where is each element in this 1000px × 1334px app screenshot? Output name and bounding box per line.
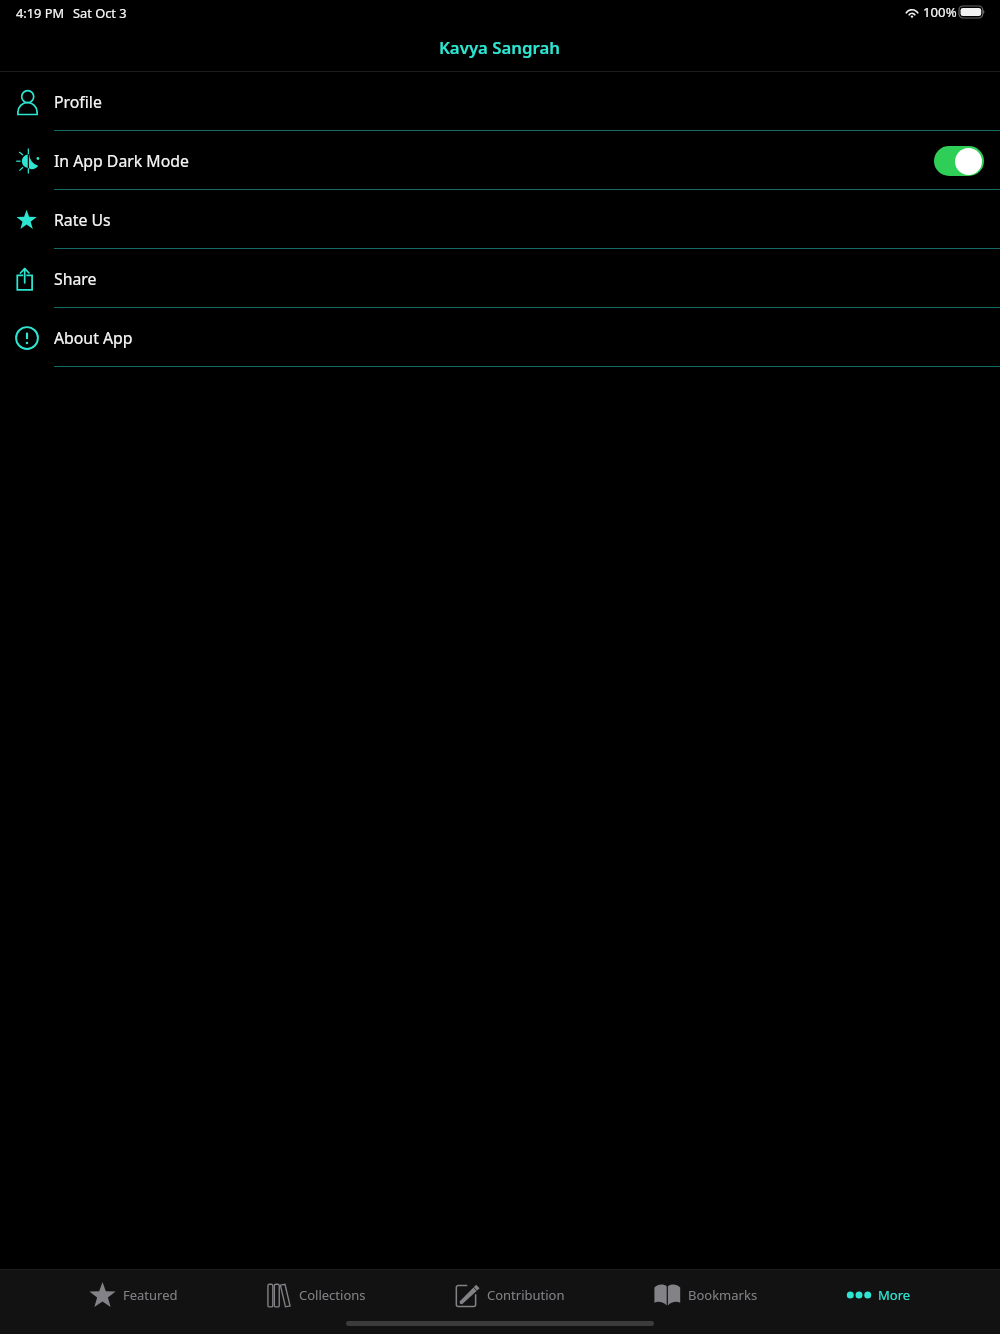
button[interactable]: Collections: [267, 1270, 366, 1319]
staticText: Sat Oct 3: [73, 4, 127, 21]
staticText: Profile: [54, 91, 102, 113]
button[interactable]: About App: [0, 308, 1000, 367]
staticText: About App: [54, 327, 133, 349]
staticText: Rate Us: [54, 209, 111, 231]
staticText: Kavya Sangrah: [439, 36, 561, 59]
button[interactable]: Dark mode toggle: [934, 146, 984, 176]
button[interactable]: Contribution: [455, 1270, 565, 1319]
staticText: Collections: [299, 1286, 366, 1304]
staticText: Featured: [123, 1286, 178, 1304]
staticText: More: [878, 1286, 911, 1304]
button[interactable]: Profile: [0, 72, 1000, 131]
staticText: Share: [54, 268, 97, 290]
staticText: In App Dark Mode: [54, 150, 189, 172]
button[interactable]: More: [847, 1270, 911, 1319]
button[interactable]: Share: [0, 249, 1000, 308]
staticText: 100%: [923, 3, 957, 21]
button[interactable]: In App Dark Mode: [0, 131, 1000, 190]
staticText: Bookmarks: [688, 1286, 758, 1304]
button[interactable]: Featured: [89, 1270, 178, 1319]
button[interactable]: Bookmarks: [654, 1270, 758, 1319]
staticText: 4:19 PM: [16, 4, 65, 21]
button[interactable]: Rate Us: [0, 190, 1000, 249]
staticText: Contribution: [487, 1286, 565, 1304]
